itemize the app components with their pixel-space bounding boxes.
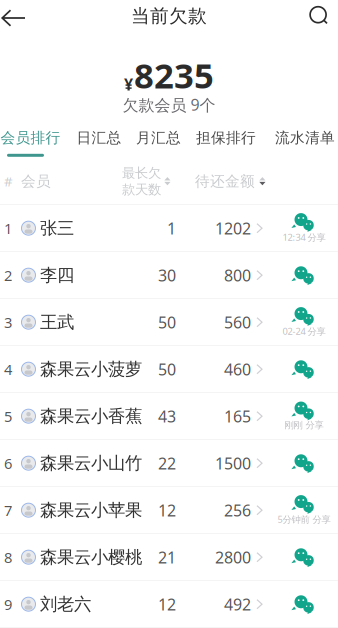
staticText: 担保排行: [196, 129, 256, 147]
staticText: 50: [158, 312, 176, 333]
staticText: 22: [158, 453, 176, 474]
staticText: 3: [4, 312, 12, 332]
staticText: 会员排行: [0, 129, 60, 147]
staticText: 日汇总: [76, 129, 121, 147]
staticText: 待还金额: [195, 172, 255, 190]
button[interactable]: 月汇总: [140, 129, 177, 157]
staticText: 02-24 分享: [282, 325, 325, 337]
staticText: 5: [4, 406, 12, 426]
button[interactable]: 1: [0, 205, 338, 251]
staticText: 2: [4, 265, 12, 285]
staticText: 12: [158, 500, 176, 521]
staticText: 1500: [215, 453, 251, 474]
staticText: 21: [158, 547, 176, 568]
button[interactable]: 8: [0, 534, 338, 580]
staticText: 王武: [40, 311, 74, 333]
staticText: 刚刚 分享: [284, 419, 323, 431]
staticText: 800: [224, 265, 251, 286]
staticText: 森果云小山竹: [40, 452, 142, 474]
button[interactable]: 9: [0, 581, 338, 627]
button[interactable]: 返回: [0, 0, 32, 33]
staticText: 当前欠款: [131, 4, 207, 27]
staticText: 8235: [134, 52, 214, 98]
staticText: 460: [224, 359, 251, 380]
staticText: 会员: [21, 172, 51, 190]
button[interactable]: 3: [0, 299, 338, 345]
staticText: 森果云小香蕉: [40, 405, 142, 427]
staticText: 256: [224, 500, 251, 521]
staticText: 50: [158, 359, 176, 380]
staticText: 492: [224, 594, 251, 615]
button[interactable]: 会员排行: [3, 129, 58, 157]
staticText: 5分钟前 分享: [277, 513, 330, 525]
button[interactable]: 7: [0, 487, 338, 533]
staticText: 1202: [215, 218, 251, 239]
staticText: 森果云小樱桃: [40, 546, 142, 568]
staticText: 欠款会员 9个: [122, 94, 215, 115]
staticText: 森果云小苹果: [40, 499, 142, 521]
staticText: 7: [4, 500, 12, 520]
staticText: 9: [4, 594, 12, 614]
staticText: 165: [224, 406, 251, 427]
staticText: 月汇总: [136, 129, 181, 147]
staticText: 1: [4, 218, 12, 238]
button[interactable]: 4: [0, 346, 338, 392]
staticText: 30: [158, 265, 176, 286]
staticText: #: [4, 172, 13, 190]
staticText: 2800: [215, 547, 251, 568]
button[interactable]: 流水清单: [275, 129, 335, 157]
staticText: 8: [4, 547, 12, 567]
staticText: 560: [224, 312, 251, 333]
button[interactable]: 6: [0, 440, 338, 486]
staticText: 12:34 分享: [282, 231, 325, 243]
staticText: 4: [4, 359, 12, 379]
staticText: 流水清单: [275, 129, 335, 147]
staticText: 刘老六: [40, 593, 91, 615]
staticText: 43: [158, 406, 176, 427]
staticText: 1: [167, 218, 176, 239]
staticText: 12: [158, 594, 176, 615]
staticText: 6: [4, 453, 12, 473]
button[interactable]: 5: [0, 393, 338, 439]
staticText: ¥: [124, 74, 133, 95]
button[interactable]: 担保排行: [199, 129, 252, 157]
button[interactable]: 搜索: [304, 0, 334, 33]
button[interactable]: 2: [0, 252, 338, 298]
staticText: 张三: [40, 217, 74, 239]
staticText: 最长欠 款天数: [122, 165, 161, 198]
button[interactable]: 日汇总: [80, 129, 117, 157]
staticText: 森果云小菠萝: [40, 358, 142, 380]
staticText: 李四: [40, 264, 74, 286]
